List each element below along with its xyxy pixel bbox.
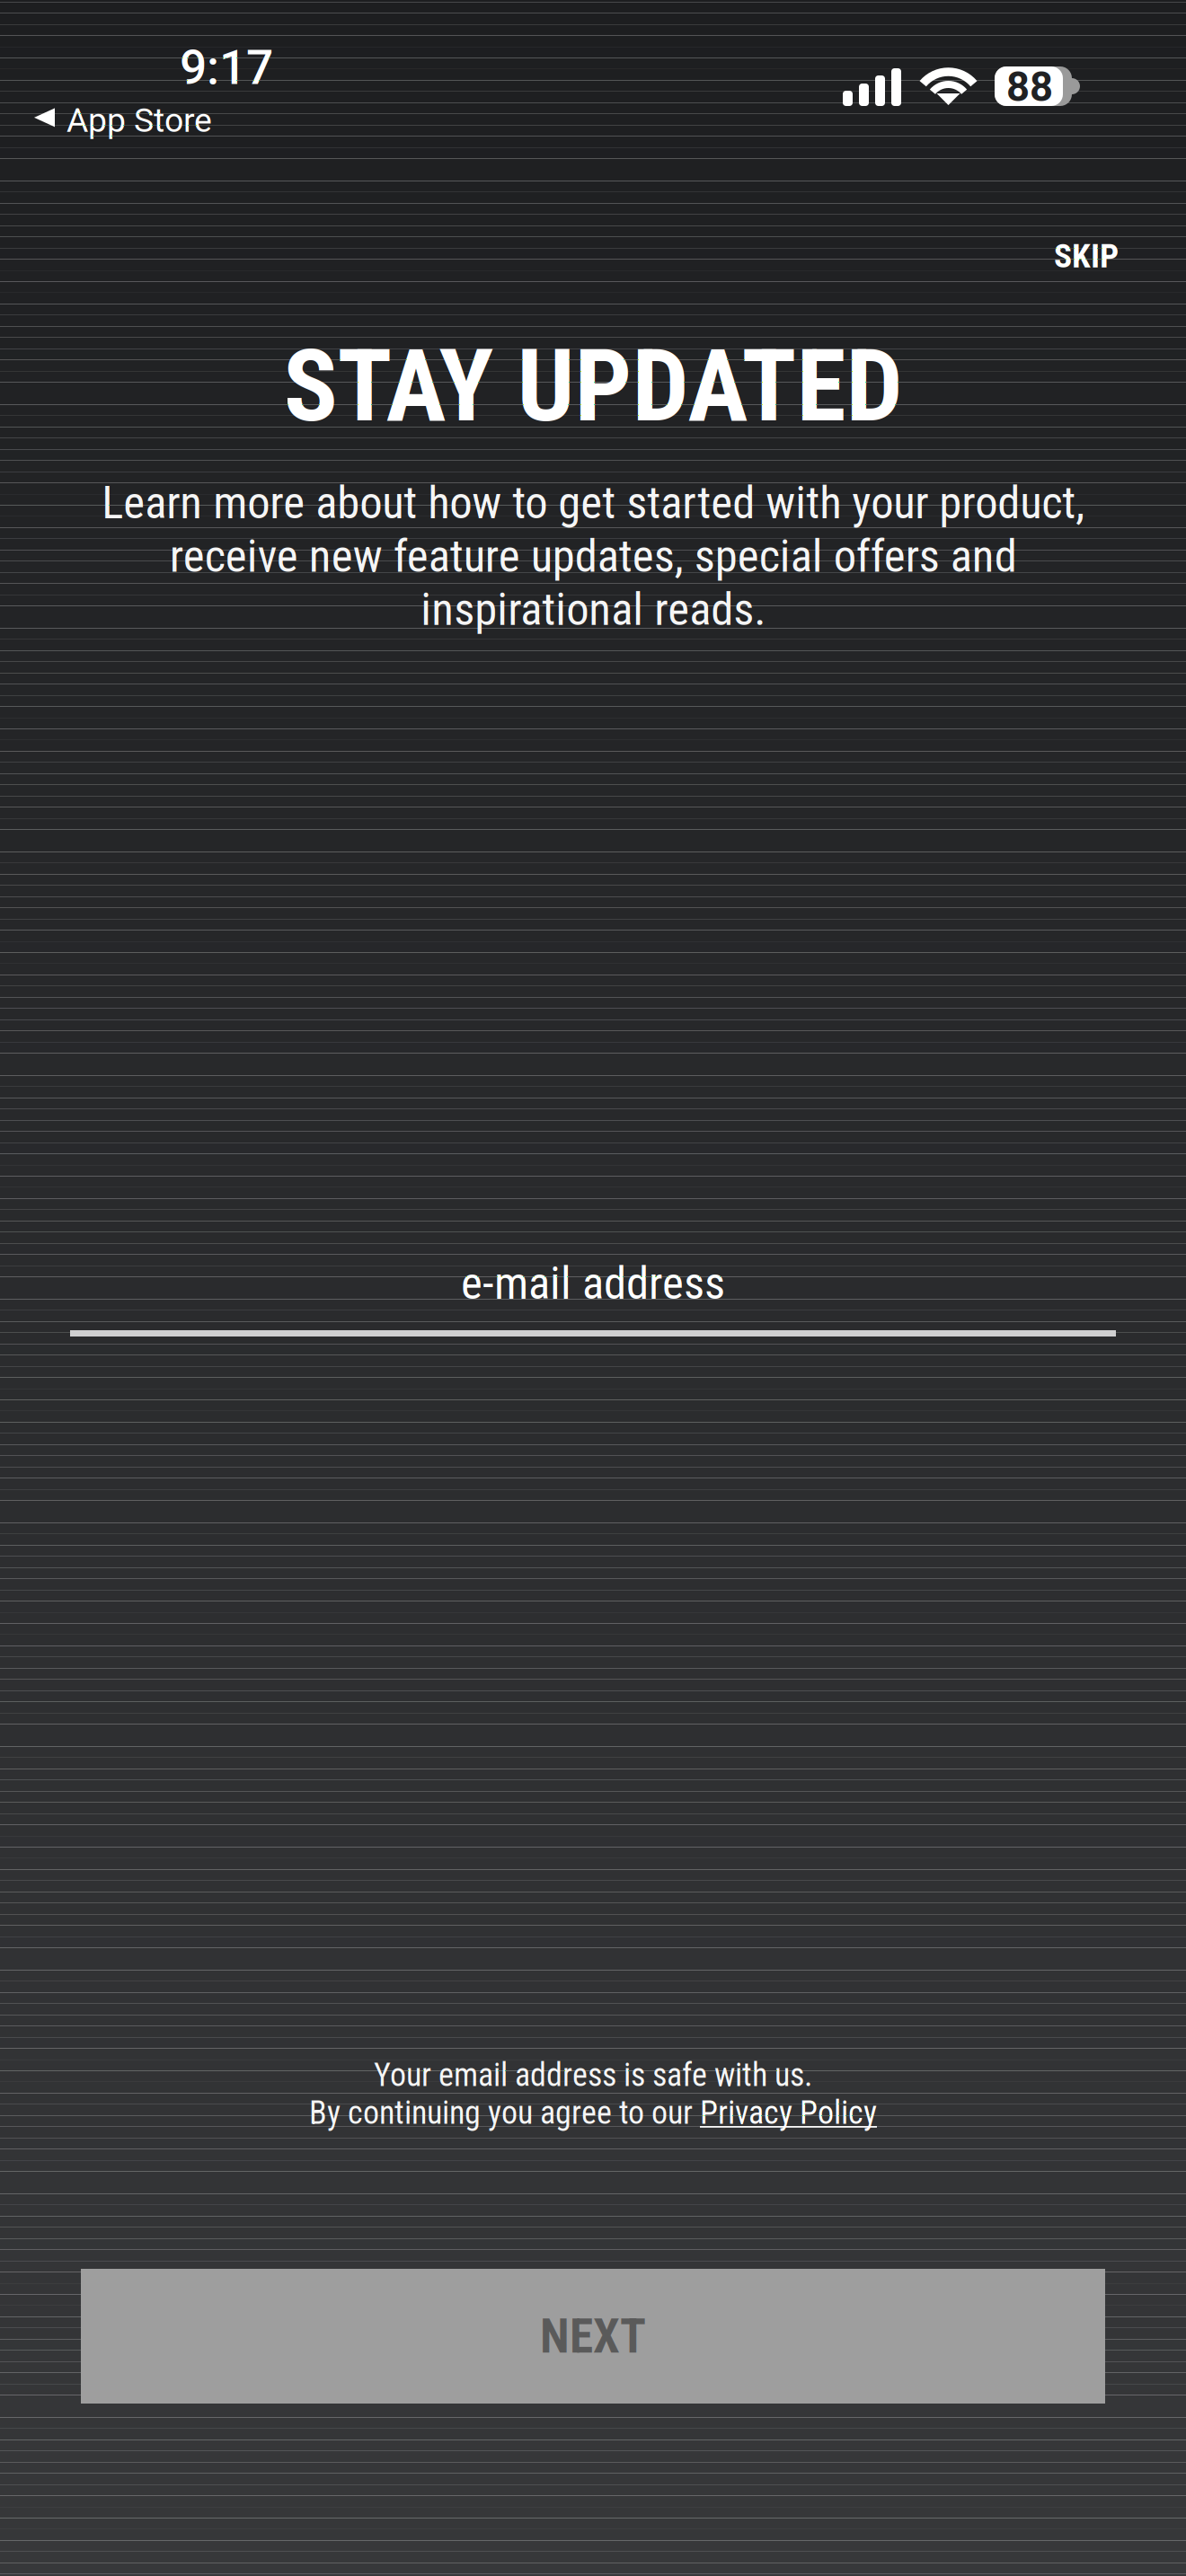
staticText: By continuing you agree to our bbox=[309, 2094, 700, 2132]
button[interactable]: NEXT bbox=[81, 2269, 1105, 2404]
staticText: e-mail address bbox=[461, 1257, 725, 1310]
staticText: App Store bbox=[66, 101, 212, 140]
staticText: NEXT bbox=[540, 2308, 646, 2364]
button[interactable]: SKIP bbox=[1031, 218, 1142, 293]
staticText: STAY UPDATED bbox=[283, 327, 903, 445]
staticText: Your email address is safe with us. bbox=[374, 2056, 812, 2094]
staticText: 88 bbox=[1006, 63, 1053, 111]
staticText: Privacy Policy bbox=[700, 2094, 877, 2132]
button[interactable]: Back to App Store bbox=[25, 90, 221, 151]
button[interactable]: Privacy Policy bbox=[700, 2094, 877, 2132]
staticText: 9:17 bbox=[180, 40, 273, 96]
staticText: Learn more about how to get started with… bbox=[102, 476, 1084, 636]
button[interactable]: e-mail address bbox=[70, 1219, 1116, 1354]
staticText: SKIP bbox=[1054, 236, 1119, 275]
